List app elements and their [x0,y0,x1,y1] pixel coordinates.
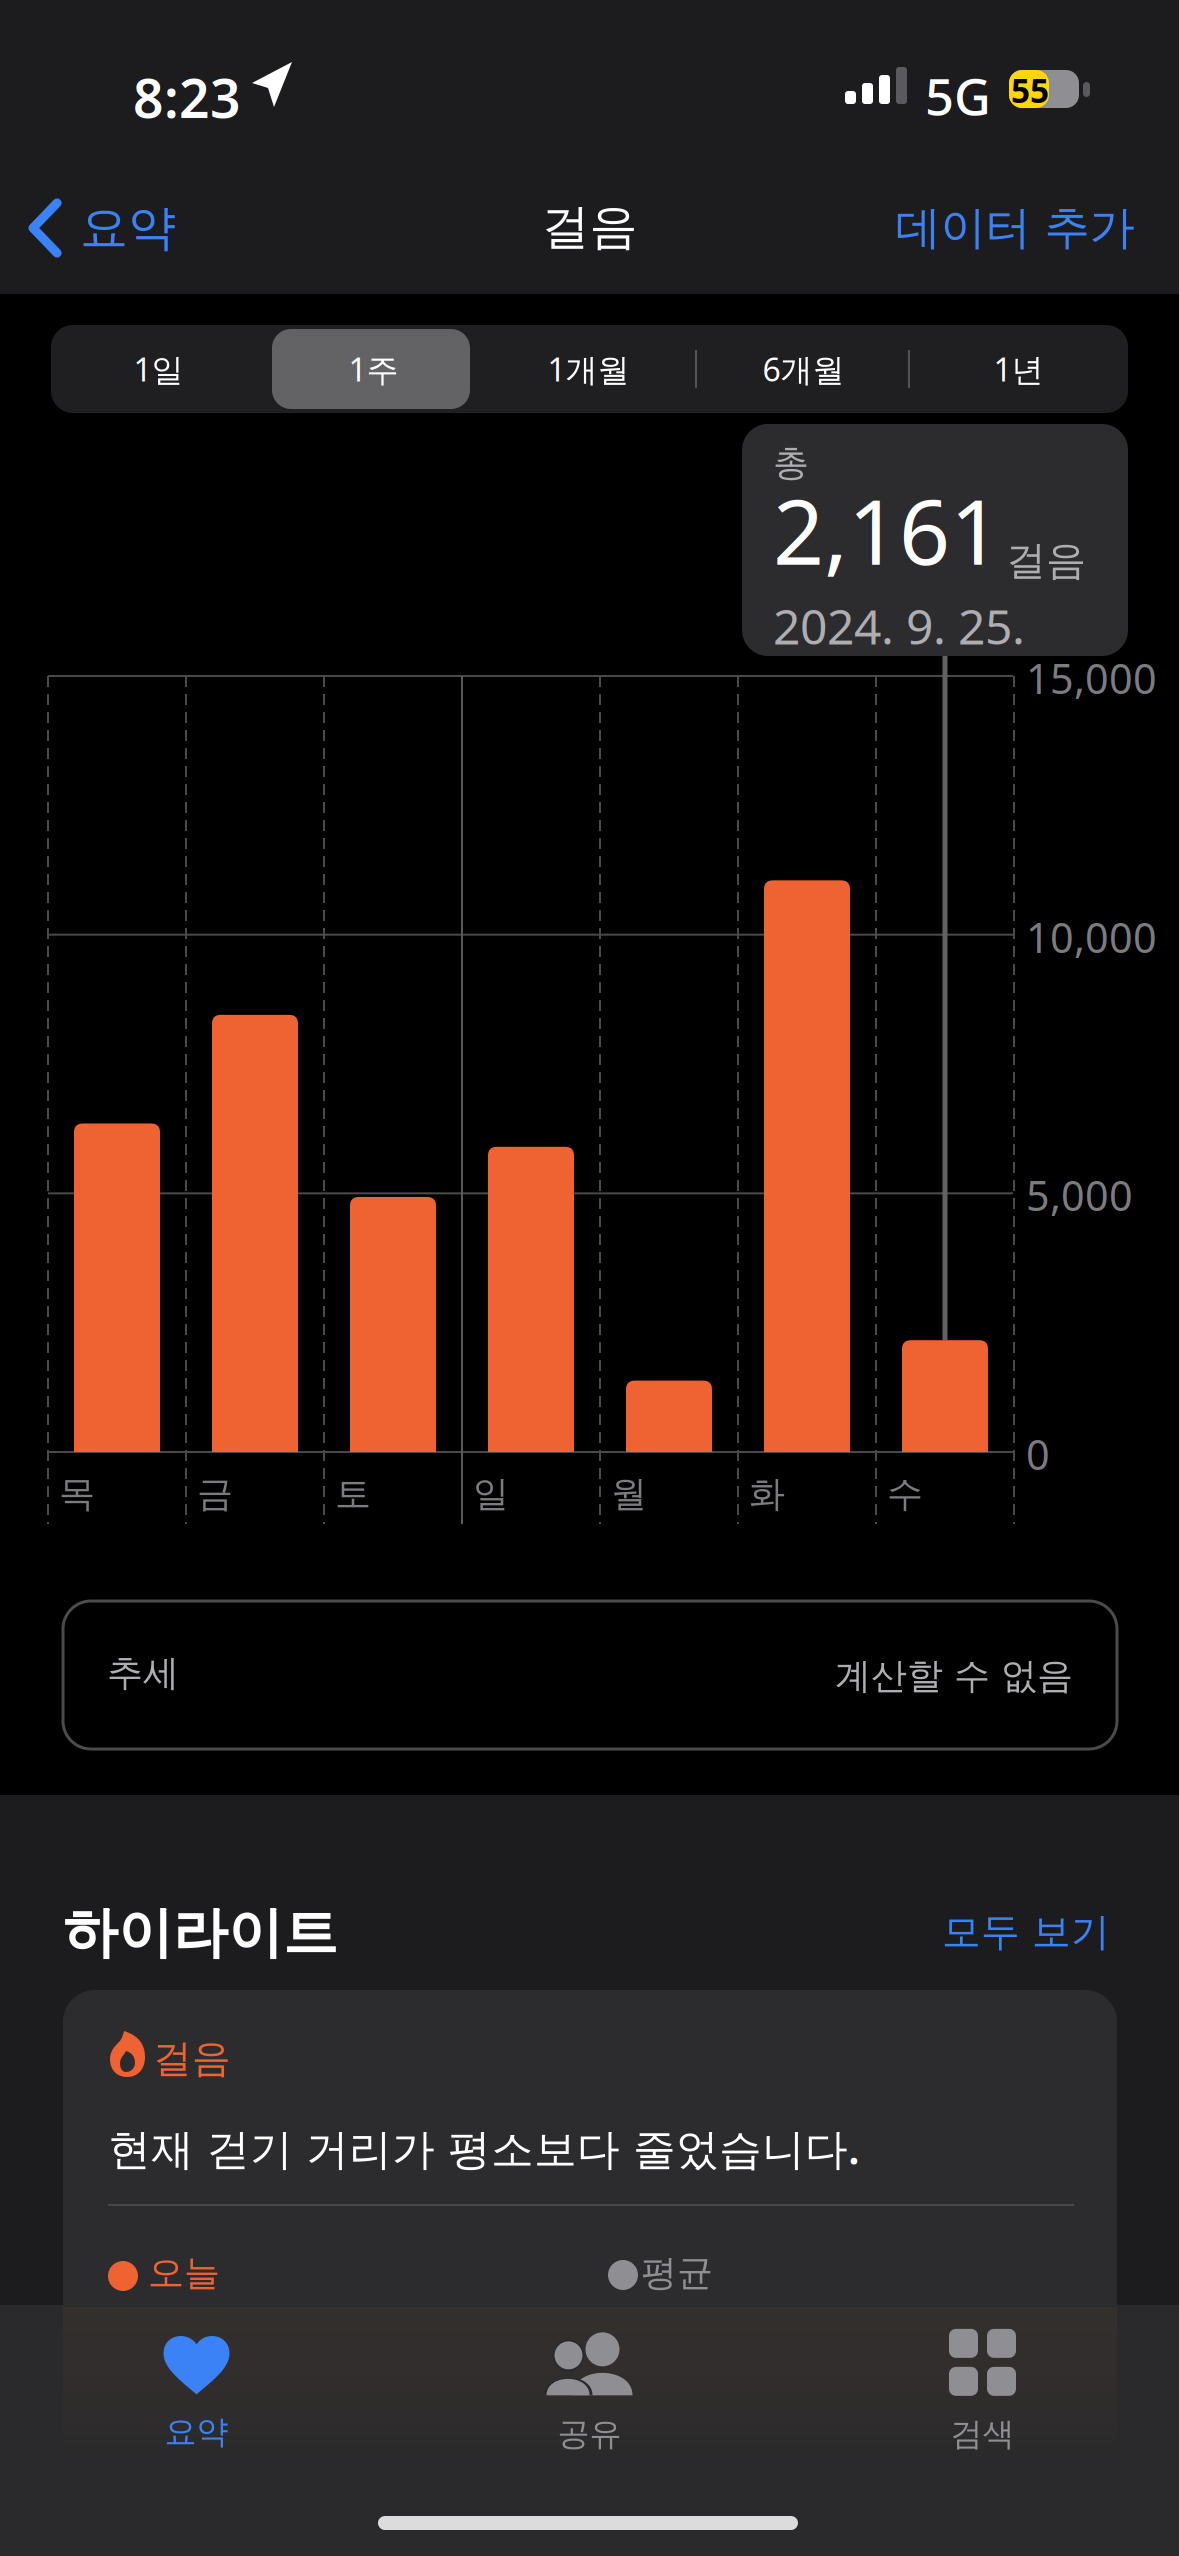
button[interactable]: 공유 [393,2316,786,2466]
staticText: 공유 [557,2414,621,2454]
staticText: 총 [773,441,809,485]
staticText: 금 [197,1472,233,1516]
staticText: 일 [473,1472,509,1516]
button[interactable]: 추세 [63,1601,1117,1749]
staticText: 55 [1011,68,1049,112]
button[interactable]: 데이터 추가 [869,189,1161,267]
button[interactable]: 1개월 [481,325,696,413]
button[interactable]: 1주 [266,325,481,413]
staticText: 요약 [164,2412,228,2452]
staticText: 5G [925,62,991,129]
staticText: 2,161 [773,471,1001,589]
staticText: 1주 [348,348,398,390]
staticText: 요약 [80,198,176,257]
staticText: 15,000 [1026,651,1157,705]
staticText: 목 [59,1472,95,1516]
staticText: 걸음 [153,2035,231,2082]
button[interactable]: 1일 [51,325,266,413]
staticText: 토 [335,1472,371,1516]
staticText: 걸음 [541,197,637,256]
button[interactable]: 검색 [786,2316,1179,2466]
staticText: 데이터 추가 [895,200,1134,256]
staticText: 모두 보기 [942,1908,1110,1956]
staticText: 오늘 [148,2251,220,2295]
staticText: 1일 [133,348,183,390]
staticText: 월 [611,1472,647,1516]
button[interactable]: 6개월 [696,325,911,413]
button[interactable]: 요약 [0,2316,393,2466]
button[interactable]: 1년 [911,325,1126,413]
staticText: 1개월 [547,348,629,390]
staticText: 6개월 [762,348,844,390]
staticText: 10,000 [1026,910,1157,964]
staticText: 0 [1026,1427,1050,1481]
staticText: 계산할 수 없음 [835,1654,1073,1698]
button[interactable]: 걸음 [63,1990,1117,2410]
staticText: 하이라이트 [63,1899,338,1966]
staticText: 현재 걷기 거리가 평소보다 줄었습니다. [108,2120,860,2176]
staticText: 수 [887,1472,923,1516]
button[interactable]: 모두 보기 [794,1902,1110,1962]
staticText: 5,000 [1026,1168,1133,1222]
button[interactable]: 요약 [26,189,206,267]
staticText: 평균 [641,2251,713,2295]
staticText: 걸음 [1006,536,1086,585]
staticText: 2024. 9. 25. [773,594,1025,658]
staticText: 8:23 [133,62,241,133]
staticText: 검색 [950,2414,1014,2454]
staticText: 화 [749,1472,785,1516]
staticText: 추세 [107,1651,179,1695]
staticText: 1년 [993,348,1043,390]
